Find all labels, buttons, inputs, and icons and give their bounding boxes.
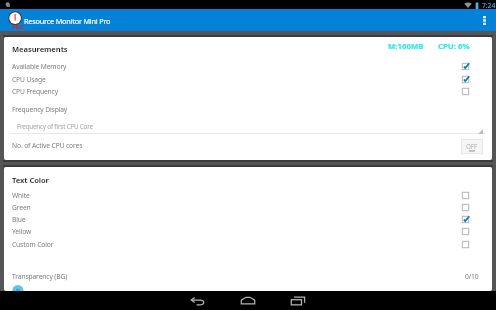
staticText: 7:24 (482, 1, 496, 10)
staticText: Transparency (BG) (12, 272, 68, 281)
staticText: M:160MB (388, 41, 424, 52)
staticText: Resource Monitor Mini Pro (24, 16, 111, 26)
staticText: CPU Usage (12, 75, 46, 84)
staticText: PRO (12, 23, 24, 31)
button[interactable]: Home (226, 291, 270, 310)
button[interactable]: Available Memory (4, 60, 492, 72)
button[interactable]: CPU Usage (4, 73, 492, 85)
button[interactable]: OFF (461, 139, 483, 154)
staticText: CPU Frequency (12, 87, 58, 96)
button[interactable]: Blue (4, 213, 492, 225)
staticText: White (12, 191, 30, 200)
staticText: Custom Color (12, 240, 54, 249)
staticText: Available Memory (12, 62, 67, 71)
button[interactable]: Green (4, 201, 492, 213)
staticText: Blue (12, 215, 26, 224)
staticText: Frequency of first CPU Core (17, 122, 93, 130)
button[interactable]: CPU Frequency (4, 85, 492, 97)
staticText: Frequency Display (12, 105, 68, 114)
staticText: 0/10 (465, 272, 479, 281)
button[interactable]: Custom Color (4, 238, 492, 250)
button[interactable]: Recent apps (276, 291, 320, 310)
button[interactable]: Yellow (4, 225, 492, 237)
button[interactable]: Back (176, 291, 220, 310)
button[interactable]: More options (476, 9, 492, 31)
staticText: Yellow (12, 227, 32, 236)
button[interactable]: White (4, 189, 492, 201)
staticText: OFF (466, 142, 478, 150)
staticText: CPU: 6% (438, 41, 470, 52)
staticText: No. of Active CPU cores (12, 141, 83, 150)
staticText: Green (12, 203, 31, 212)
staticText: Measurements (12, 44, 68, 54)
staticText: Text Color (12, 175, 49, 185)
